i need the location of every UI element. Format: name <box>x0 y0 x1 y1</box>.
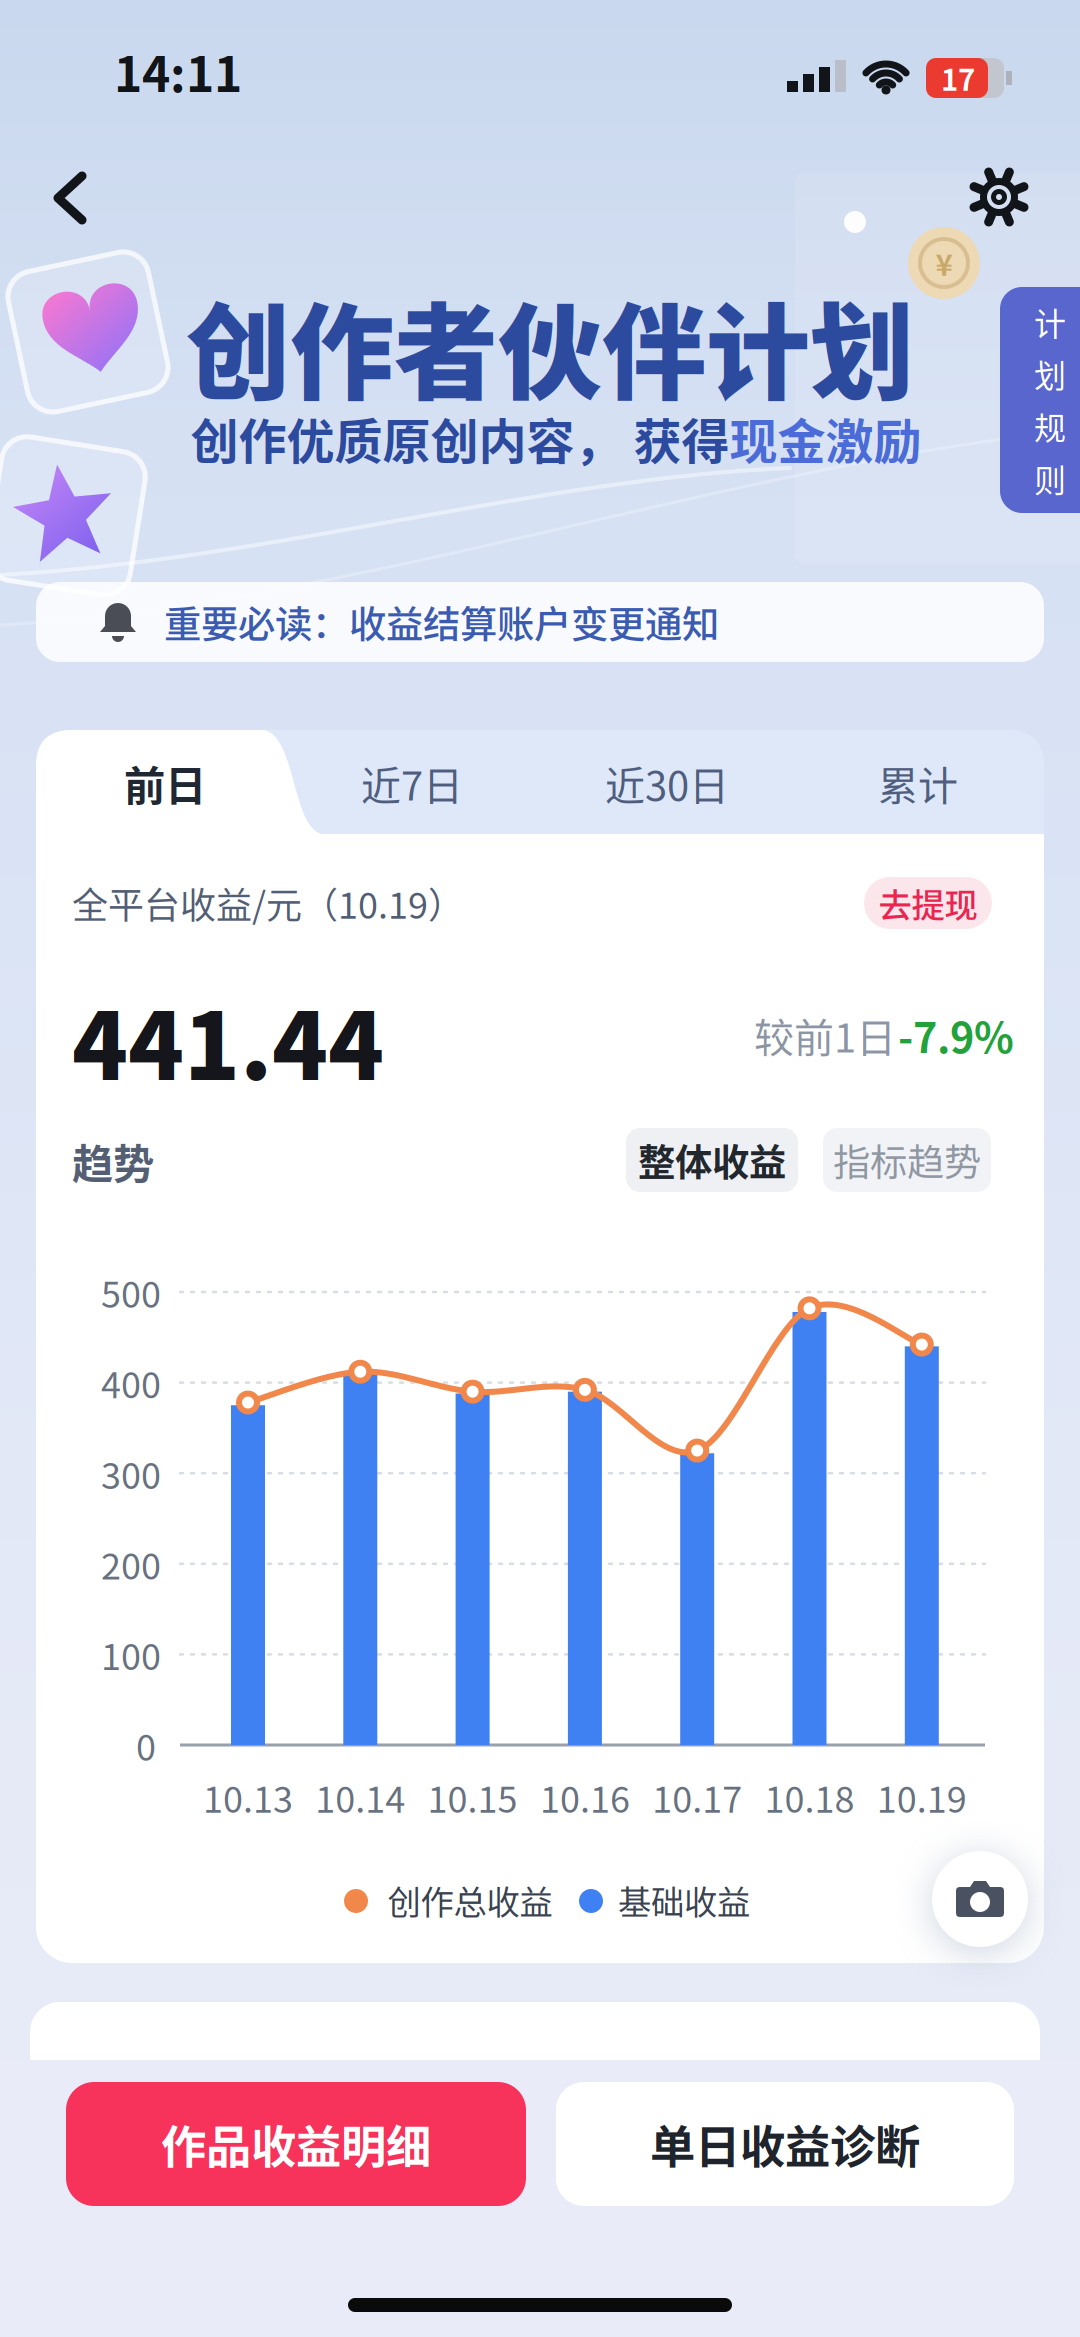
button[interactable]: 指标趋势 <box>823 1128 991 1192</box>
staticText: 10.19 <box>877 1772 967 1822</box>
staticText: 100 <box>101 1629 161 1680</box>
button[interactable]: 整体收益 <box>626 1128 798 1192</box>
staticText: 10.17 <box>652 1772 742 1822</box>
staticText: 近30日 <box>605 755 729 811</box>
staticText: 现金激励 <box>729 404 921 472</box>
staticText: 10.18 <box>764 1772 854 1822</box>
staticText: 10.15 <box>428 1772 518 1822</box>
staticText: 14:11 <box>114 37 242 105</box>
staticText: 较前1日 <box>754 1007 896 1063</box>
button[interactable]: 近30日 <box>552 731 782 835</box>
button[interactable]: Settings <box>969 167 1029 227</box>
button[interactable]: 单日收益诊断 <box>556 2082 1014 2206</box>
staticText: 去提现 <box>878 879 977 927</box>
staticText: 500 <box>101 1267 161 1317</box>
staticText: 计 <box>1034 299 1066 344</box>
staticText: 基础收益 <box>618 1876 750 1924</box>
staticText: 近7日 <box>361 755 463 811</box>
staticText: -7.9% <box>898 1006 1014 1064</box>
staticText: 重要必读：收益结算账户变更通知 <box>164 596 719 648</box>
staticText: 0 <box>136 1720 156 1770</box>
staticText: 创作总收益 <box>387 1876 552 1924</box>
staticText: 400 <box>101 1357 161 1408</box>
staticText: 10.16 <box>540 1772 630 1822</box>
staticText: 整体收益 <box>638 1134 786 1186</box>
staticText: 作品收益明细 <box>161 2112 431 2176</box>
staticText: 创作优质原创内容， 获得 <box>190 404 729 472</box>
button[interactable]: Save chart image <box>932 1851 1028 1947</box>
staticText: 划 <box>1034 351 1066 396</box>
button[interactable]: 作品收益明细 <box>66 2082 526 2206</box>
staticText: 创作者伙伴计划 <box>186 273 914 419</box>
staticText: 全平台收益/元（10.19） <box>72 878 464 928</box>
button[interactable]: 近7日 <box>302 731 522 835</box>
staticText: 441.44 <box>72 975 384 1105</box>
staticText: 趋势 <box>72 1132 154 1190</box>
staticText: 200 <box>101 1538 161 1589</box>
staticText: 300 <box>101 1448 161 1499</box>
button[interactable]: 计 <box>1000 287 1080 513</box>
button[interactable]: 去提现 <box>864 877 992 929</box>
staticText: 17 <box>941 57 975 99</box>
staticText: 10.14 <box>315 1772 405 1822</box>
staticText: 10.13 <box>203 1772 293 1822</box>
staticText: 则 <box>1034 456 1066 501</box>
staticText: 规 <box>1034 403 1066 449</box>
staticText: 累计 <box>878 755 958 811</box>
staticText: 单日收益诊断 <box>650 2112 920 2176</box>
staticText: ¥ <box>935 242 952 284</box>
staticText: 前日 <box>124 754 206 812</box>
button[interactable]: Back <box>52 172 104 224</box>
button[interactable]: 累计 <box>818 731 1018 835</box>
button[interactable]: 重要必读：收益结算账户变更通知 <box>36 582 1044 662</box>
button[interactable]: 前日 <box>45 731 285 835</box>
staticText: 指标趋势 <box>833 1134 981 1186</box>
